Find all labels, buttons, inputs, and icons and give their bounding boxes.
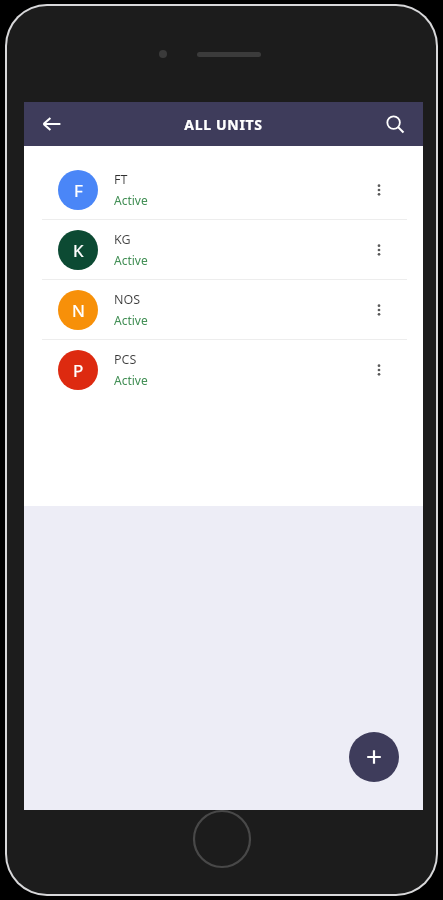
staticText: Active [114,312,148,328]
button[interactable]: More options for PCS [359,350,399,390]
staticText: N [72,299,85,322]
staticText: PCS [114,351,137,368]
button[interactable]: P [42,340,407,399]
button[interactable]: F [42,160,407,219]
staticText: Active [114,192,148,208]
button[interactable]: N [42,280,407,339]
staticText: Active [114,372,148,388]
staticText: FT [114,171,128,188]
staticText: ALL UNITS [184,115,263,134]
button[interactable]: More options for KG [359,230,399,270]
button[interactable]: Add unit [349,732,399,782]
button[interactable]: More options for FT [359,170,399,210]
staticText: Active [114,252,148,268]
staticText: K [73,239,84,262]
staticText: NOS [114,291,141,308]
staticText: F [74,179,83,202]
button[interactable]: Back [32,104,72,144]
button[interactable]: More options for NOS [359,290,399,330]
button[interactable]: Search [375,104,415,144]
button[interactable]: K [42,220,407,279]
staticText: KG [114,231,131,248]
staticText: P [73,359,84,382]
